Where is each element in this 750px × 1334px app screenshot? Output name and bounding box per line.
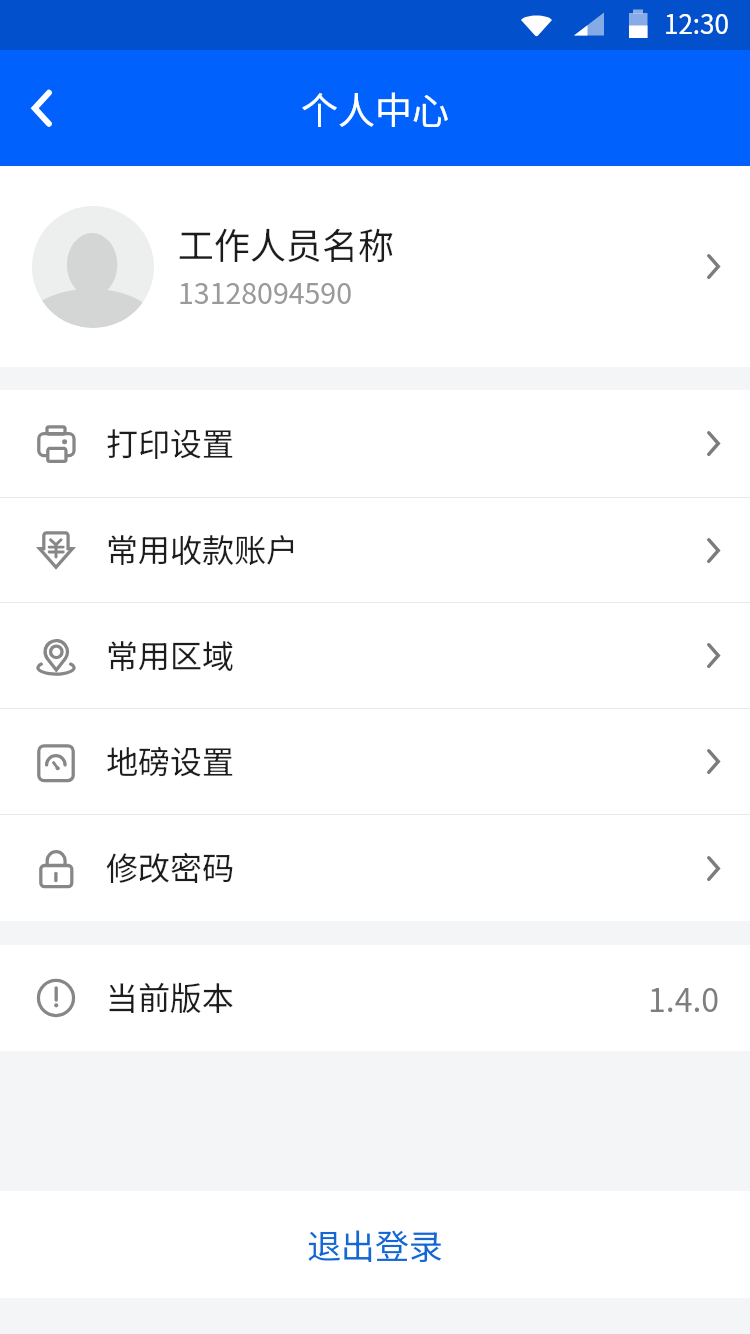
button[interactable]: 打印设置 <box>0 390 750 497</box>
button[interactable]: 退出登录 <box>0 1191 750 1298</box>
staticText: 1.4.0 <box>648 975 720 1021</box>
staticText: 退出登录 <box>307 1220 443 1269</box>
button[interactable]: 常用区域 <box>0 603 750 708</box>
staticText: 工作人员名称 <box>178 217 395 269</box>
button[interactable]: 修改密码 <box>0 815 750 921</box>
staticText: 12:30 <box>664 4 729 42</box>
staticText: 13128094590 <box>178 271 352 312</box>
staticText: 个人中心 <box>301 81 449 135</box>
staticText: 打印设置 <box>106 419 707 465</box>
staticText: 当前版本 <box>106 973 648 1019</box>
staticText: 常用区域 <box>106 631 707 677</box>
button[interactable]: 工作人员名称 <box>0 166 750 367</box>
button[interactable]: 常用收款账户 <box>0 498 750 602</box>
button[interactable]: Back <box>0 50 86 166</box>
button[interactable]: 当前版本 <box>0 945 750 1051</box>
staticText: 常用收款账户 <box>106 525 707 571</box>
staticText: 修改密码 <box>106 843 707 889</box>
staticText: 地磅设置 <box>106 737 707 783</box>
button[interactable]: 地磅设置 <box>0 709 750 814</box>
